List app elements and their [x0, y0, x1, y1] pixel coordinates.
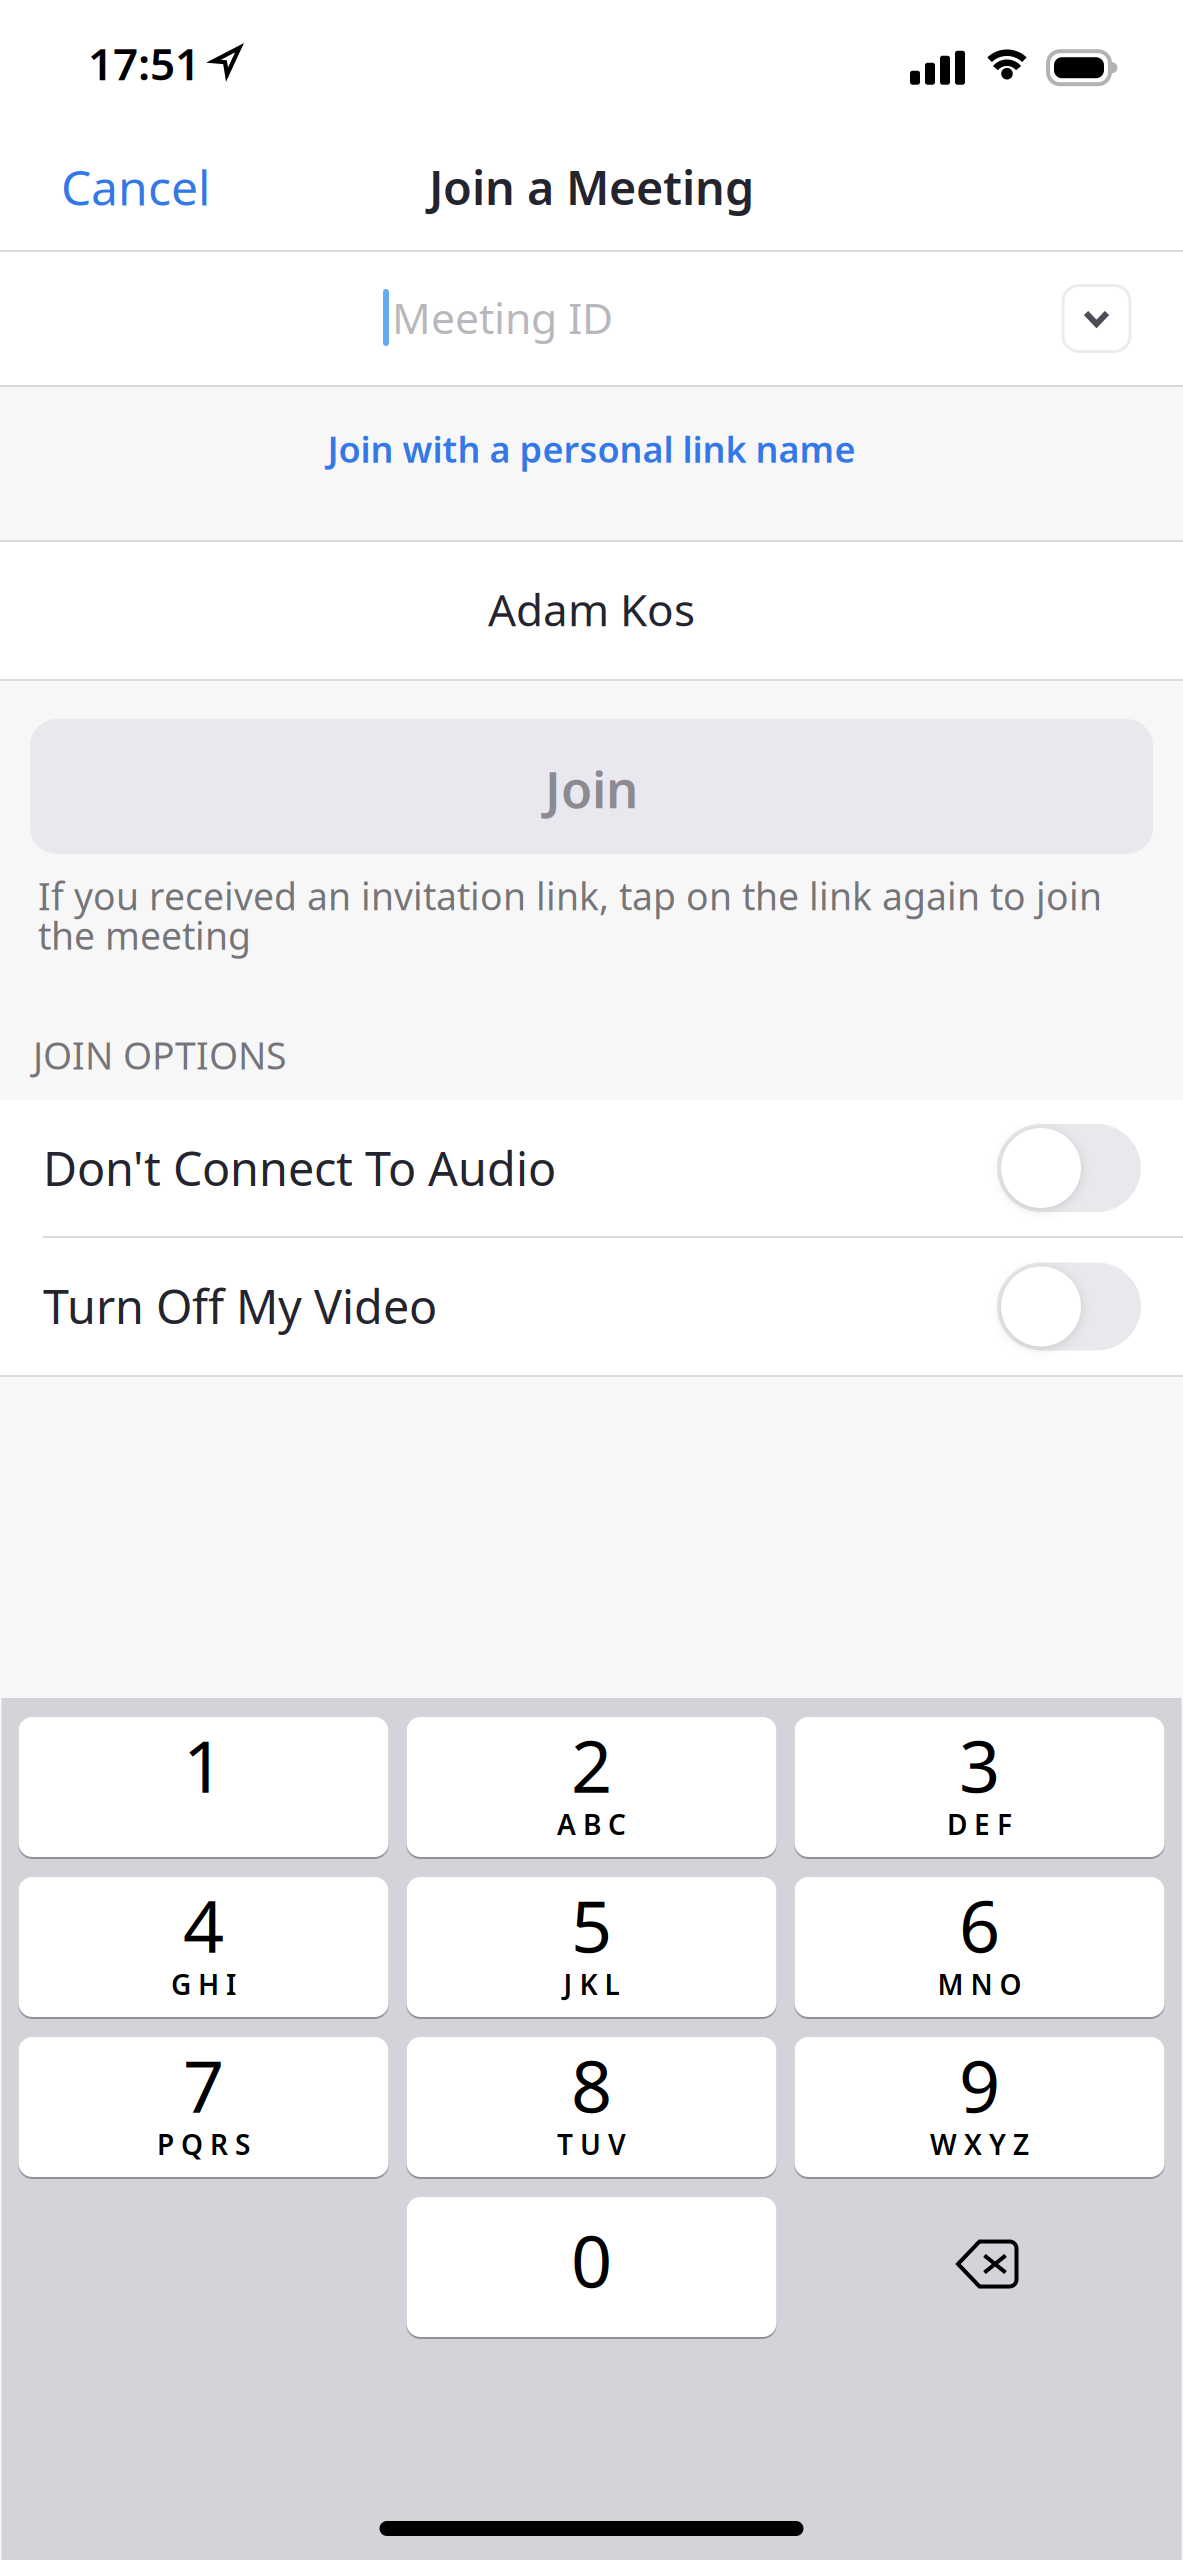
staticText: Turn Off My Video: [43, 1275, 437, 1337]
button[interactable]: Cancel: [0, 112, 250, 250]
button[interactable]: Don't Connect To Audio: [0, 1100, 1183, 1236]
button[interactable]: 8: [406, 2037, 776, 2177]
button[interactable]: Join: [30, 719, 1153, 854]
staticText: 5: [571, 1877, 612, 1973]
staticText: 0: [571, 2212, 612, 2308]
button[interactable]: 1: [18, 1717, 388, 1857]
staticText: 17:51: [88, 34, 200, 92]
button[interactable]: Recent meeting IDs: [1063, 285, 1130, 351]
staticText: 1: [183, 1717, 224, 1813]
button[interactable]: 7: [18, 2037, 388, 2177]
button[interactable]: 0: [406, 2197, 776, 2337]
staticText: JOIN OPTIONS: [33, 1030, 286, 1080]
staticText: 9: [959, 2037, 1000, 2133]
button[interactable]: Delete: [794, 2197, 1164, 2337]
staticText: Adam Kos: [488, 580, 695, 638]
staticText: Don't Connect To Audio: [43, 1137, 556, 1199]
button[interactable]: 2: [406, 1717, 776, 1857]
staticText: Cancel: [61, 155, 210, 219]
button[interactable]: 9: [794, 2037, 1164, 2177]
staticText: 3: [959, 1717, 1000, 1813]
button[interactable]: Turn Off My Video: [0, 1238, 1183, 1375]
staticText: A B C: [557, 1806, 626, 1843]
staticText: 7: [183, 2037, 224, 2133]
staticText: T U V: [557, 2126, 626, 2163]
staticText: Join: [545, 755, 638, 822]
button[interactable]: Join with a personal link name: [0, 387, 1183, 540]
staticText: Meeting ID: [392, 289, 613, 346]
button[interactable]: 4: [18, 1877, 388, 2017]
staticText: G H I: [171, 1966, 236, 2003]
staticText: Join with a personal link name: [327, 425, 855, 473]
button[interactable]: 3: [794, 1717, 1164, 1857]
staticText: M N O: [937, 1966, 1021, 2003]
staticText: W X Y Z: [930, 2126, 1029, 2163]
staticText: Join a Meeting: [429, 156, 754, 218]
staticText: 4: [183, 1877, 224, 1973]
button[interactable]: 6: [794, 1877, 1164, 2017]
staticText: 8: [571, 2037, 612, 2133]
staticText: 2: [571, 1717, 612, 1813]
button[interactable]: 5: [406, 1877, 776, 2017]
staticText: J K L: [563, 1966, 619, 2003]
staticText: D E F: [947, 1806, 1012, 1843]
staticText: If you received an invitation link, tap …: [38, 871, 1102, 960]
staticText: 6: [959, 1877, 1000, 1973]
staticText: P Q R S: [157, 2126, 250, 2163]
